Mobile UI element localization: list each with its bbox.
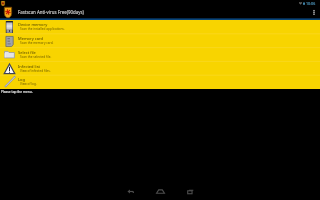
staticText: 10:06 <box>306 1 316 6</box>
button[interactable]: Memory card <box>0 34 320 48</box>
button[interactable]: Infected list <box>0 62 320 76</box>
staticText: Scan the installed applications. <box>20 27 65 31</box>
button[interactable]: Home <box>145 182 175 200</box>
staticText: Select file <box>18 50 36 55</box>
staticText: View of infected files. <box>20 69 51 73</box>
staticText: Fastscan Anti-virus Free(90days) <box>18 9 84 15</box>
staticText: Log <box>18 77 25 82</box>
staticText: View of log. <box>20 82 37 86</box>
staticText: Memory card <box>18 36 43 41</box>
staticText: Device memory <box>18 22 48 27</box>
staticText: Scan the memory card. <box>20 41 54 45</box>
button[interactable]: Select file <box>0 48 320 62</box>
staticText: Please tap the menu. <box>1 90 33 94</box>
staticText: Infected list <box>18 64 41 69</box>
staticText: Scan the selected file. <box>20 55 52 59</box>
button[interactable]: Log <box>0 76 320 89</box>
button[interactable]: Recent apps <box>175 182 205 200</box>
button[interactable]: Back <box>115 182 145 200</box>
button[interactable]: More options <box>308 6 320 18</box>
button[interactable]: Device memory <box>0 20 320 34</box>
